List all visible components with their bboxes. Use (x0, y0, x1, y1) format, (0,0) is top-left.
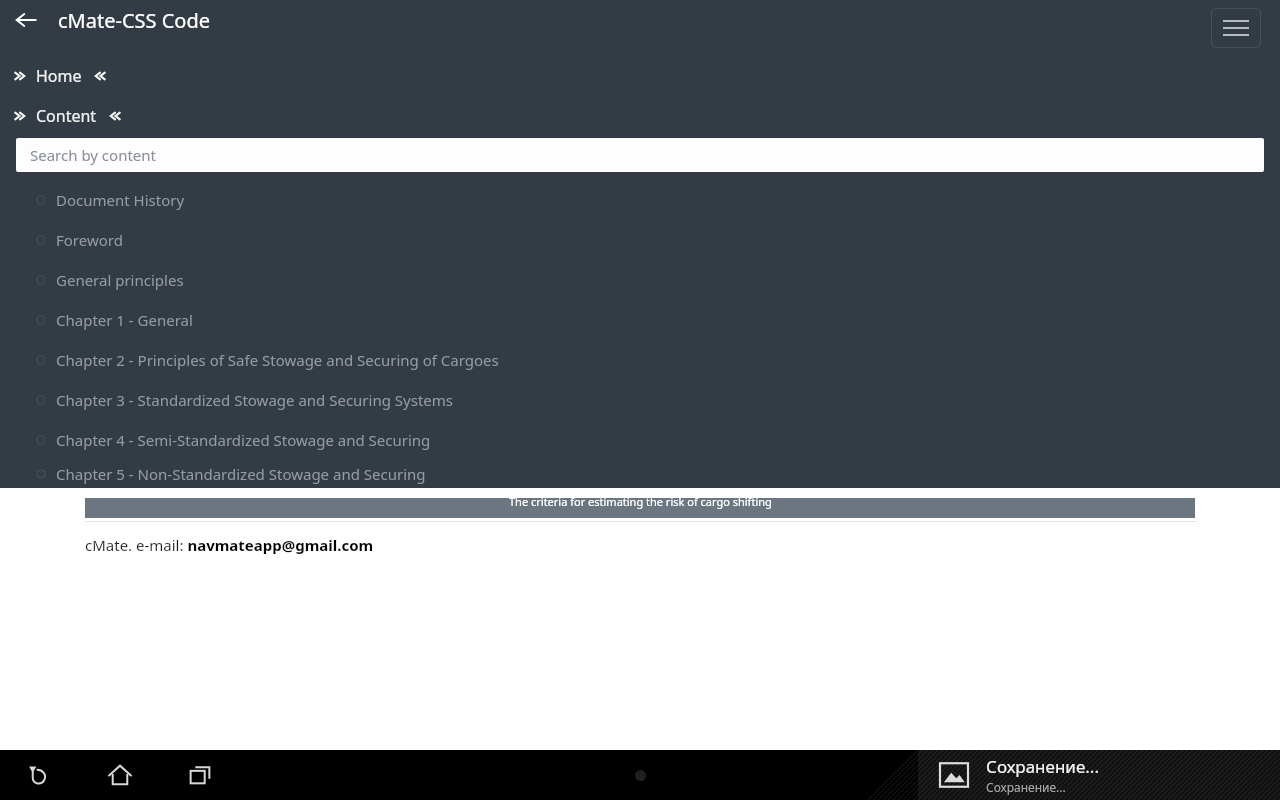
button[interactable]: Chapter 3 - Standardized Stowage and Sec… (0, 380, 1280, 420)
button[interactable]: Back (6, 0, 46, 40)
staticText: Chapter 5 - Non-Standardized Stowage and… (56, 464, 426, 484)
staticText: Chapter 1 - General (56, 310, 193, 330)
button[interactable]: Сохранение... (918, 750, 1280, 800)
button[interactable]: Chapter 2 - Principles of Safe Stowage a… (0, 340, 1280, 380)
button[interactable]: Search by content (16, 138, 1264, 172)
staticText: The criteria for estimating the risk of … (509, 494, 772, 509)
staticText: cMate. e-mail: navmateapp@gmail.com (85, 535, 374, 555)
staticText: cMate-CSS Code (58, 7, 211, 34)
button[interactable]: Content (0, 96, 1280, 136)
staticText: Chapter 3 - Standardized Stowage and Sec… (56, 390, 453, 410)
button[interactable]: Back (18, 753, 62, 797)
staticText: Home (36, 65, 82, 87)
staticText: Chapter 4 - Semi-Standardized Stowage an… (56, 430, 431, 450)
staticText: Search by content (30, 145, 156, 165)
button[interactable]: General principles (0, 260, 1280, 300)
button[interactable]: Chapter 1 - General (0, 300, 1280, 340)
button[interactable]: Toggle navigation (1211, 8, 1261, 48)
button[interactable]: Home (0, 56, 1280, 96)
staticText: Chapter 2 - Principles of Safe Stowage a… (56, 350, 499, 370)
button[interactable]: Document History (0, 180, 1280, 220)
staticText: Content (36, 105, 97, 127)
staticText: Foreword (56, 230, 123, 250)
staticText: Сохранение... (986, 755, 1099, 778)
staticText: Сохранение... (986, 779, 1066, 795)
staticText: General principles (56, 270, 184, 290)
button[interactable]: Chapter 5 - Non-Standardized Stowage and… (0, 460, 1280, 488)
button[interactable]: Chapter 4 - Semi-Standardized Stowage an… (0, 420, 1280, 460)
button[interactable]: Foreword (0, 220, 1280, 260)
button[interactable]: Home (98, 753, 142, 797)
button[interactable]: Recent apps (178, 753, 222, 797)
staticText: Document History (56, 190, 185, 210)
